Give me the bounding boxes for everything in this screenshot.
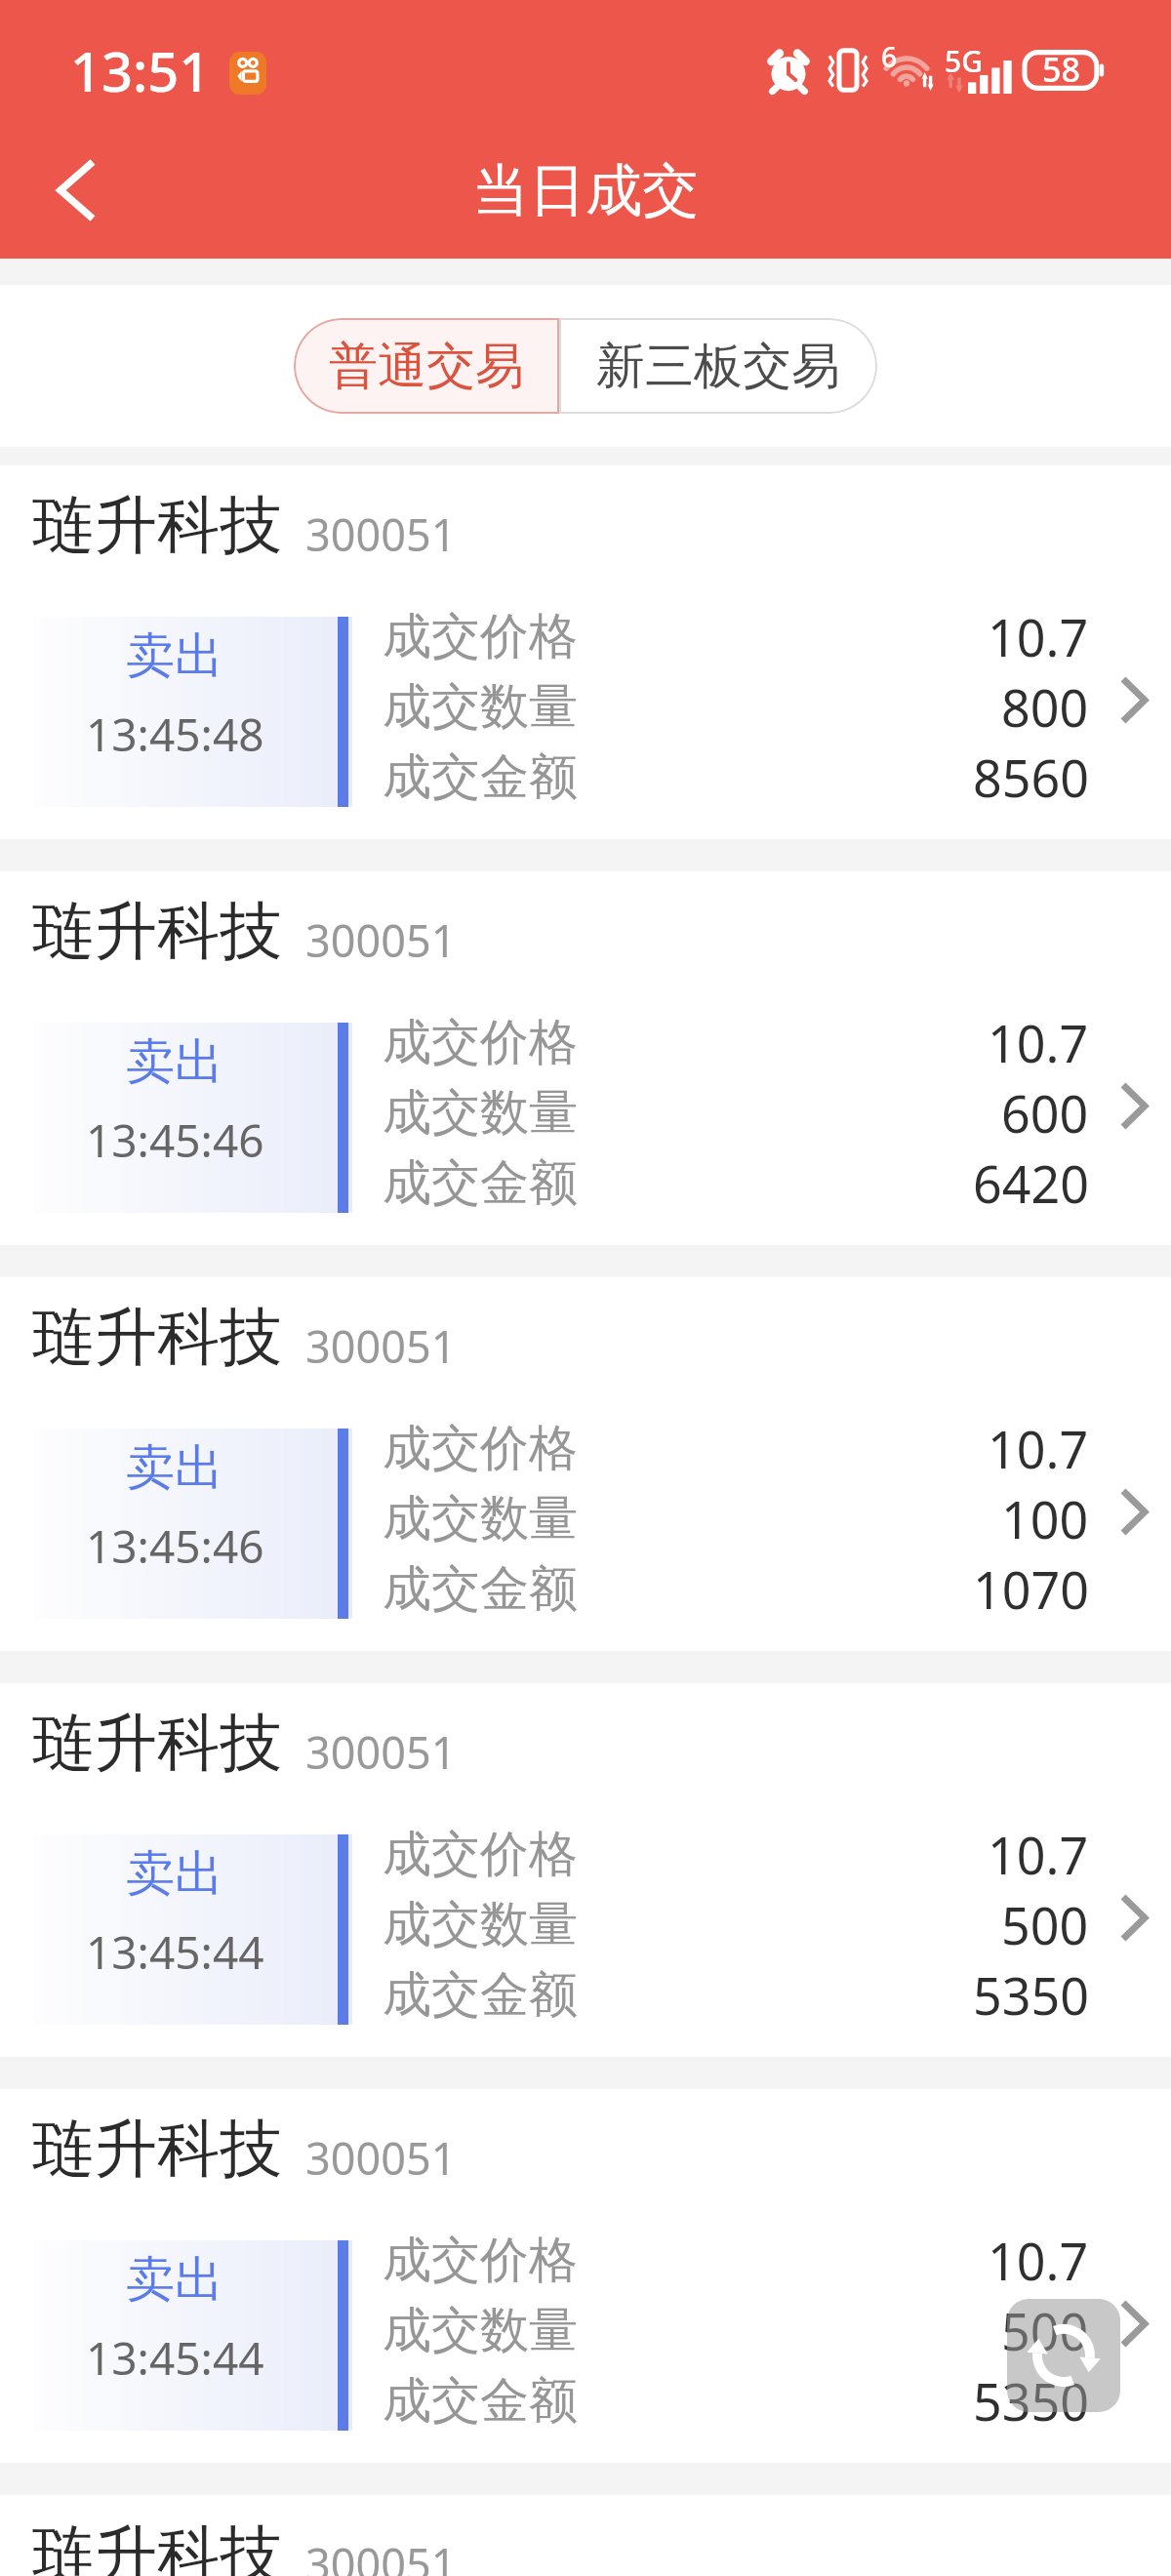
button[interactable]: 普通交易 [294,318,559,414]
staticText: 100 [1001,1484,1089,1553]
button[interactable]: 琏升科技 [0,2089,1171,2463]
staticText: 琏升科技 [32,892,282,971]
staticText: 1070 [973,1554,1089,1624]
button[interactable]: 琏升科技 [0,1277,1171,1651]
staticText: 10.7 [988,1820,1089,1889]
staticText: 当日成交 [472,155,699,226]
button[interactable]: Back [0,122,154,259]
staticText: 成交价格 [383,606,578,667]
staticText: 300051 [305,2534,457,2576]
staticText: 13:51 [70,33,211,107]
staticText: 成交数量 [383,1488,578,1550]
button[interactable]: 新三板交易 [559,318,877,414]
staticText: 6 [881,38,898,75]
staticText: 琏升科技 [32,486,282,565]
staticText: 卖出 [126,1437,223,1499]
button[interactable]: 琏升科技 [0,1683,1171,2057]
staticText: 500 [1001,1890,1089,1959]
staticText: 成交数量 [383,676,578,738]
staticText: 普通交易 [329,336,524,397]
staticText: 300051 [305,1722,457,1782]
staticText: 8560 [973,743,1089,812]
staticText: 58 [1042,47,1080,92]
staticText: 琏升科技 [32,2516,282,2576]
staticText: 5G [945,41,983,81]
staticText: 新三板交易 [596,336,840,397]
staticText: 13:45:44 [86,2327,264,2389]
staticText: 13:45:48 [86,704,264,765]
staticText: 卖出 [126,1843,223,1905]
staticText: 300051 [305,1316,457,1376]
staticText: 琏升科技 [32,2110,282,2189]
staticText: 成交价格 [383,1824,578,1885]
staticText: 5350 [973,1960,1089,2030]
staticText: 成交金额 [383,1152,578,1214]
staticText: 卖出 [126,625,223,687]
button[interactable]: 琏升科技 [0,2495,1171,2576]
staticText: 成交金额 [383,746,578,808]
staticText: 10.7 [988,1414,1089,1483]
staticText: 13:45:46 [86,1515,264,1577]
staticText: 300051 [305,504,457,564]
staticText: 10.7 [988,2226,1089,2295]
staticText: 成交金额 [383,1558,578,1620]
staticText: 6420 [973,1148,1089,1218]
staticText: 卖出 [126,1031,223,1093]
staticText: 成交数量 [383,1082,578,1144]
button[interactable]: 琏升科技 [0,465,1171,839]
staticText: 300051 [305,910,457,970]
staticText: 成交价格 [383,1418,578,1479]
staticText: 800 [1001,672,1089,742]
staticText: 卖出 [126,2249,223,2311]
staticText: 300051 [305,2128,457,2188]
staticText: 10.7 [988,602,1089,671]
staticText: 600 [1001,1078,1089,1147]
staticText: 13:45:46 [86,1109,264,1171]
staticText: 10.7 [988,1008,1089,1077]
staticText: 成交金额 [383,1964,578,2026]
staticText: 成交价格 [383,1012,578,1073]
staticText: 成交数量 [383,1894,578,1955]
button[interactable]: Refresh [1007,2299,1120,2412]
staticText: 5350 [973,2366,1089,2435]
staticText: 500 [1001,2296,1089,2365]
staticText: 13:45:44 [86,1921,264,1983]
staticText: 琏升科技 [32,1298,282,1377]
staticText: 成交数量 [383,2300,578,2361]
staticText: 成交金额 [383,2370,578,2432]
button[interactable]: 琏升科技 [0,871,1171,1245]
staticText: 成交价格 [383,2230,578,2291]
staticText: 琏升科技 [32,1704,282,1783]
